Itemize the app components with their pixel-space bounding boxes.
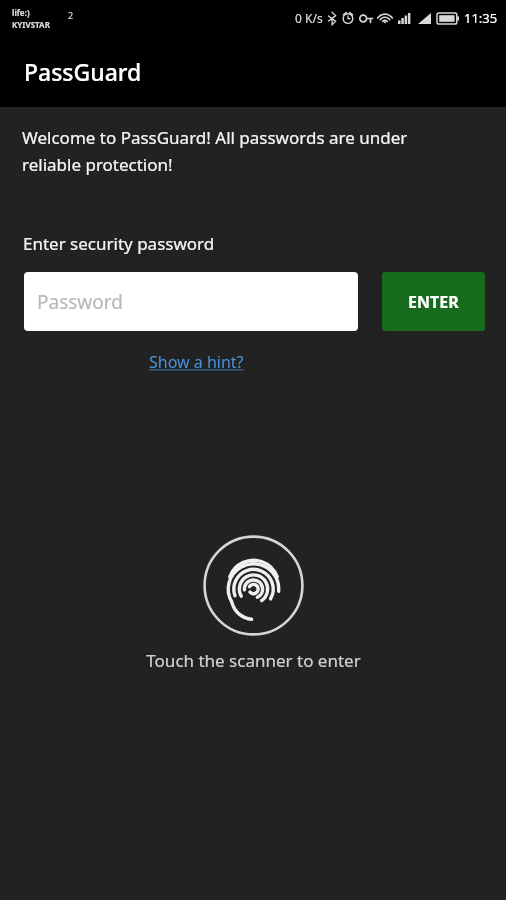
button[interactable]: Password [24,272,358,331]
button[interactable]: ENTER [382,272,485,331]
staticText: ENTER [408,291,459,313]
staticText: KYIVSTAR [12,19,50,30]
staticText: Enter security password [23,232,215,255]
staticText: 2 [68,9,74,21]
staticText: Password [37,289,123,315]
staticText: 0 K/s [295,10,323,26]
button[interactable]: Fingerprint scanner [203,535,304,636]
staticText: life:) [12,7,30,18]
staticText: Welcome to PassGuard! All passwords are … [22,126,466,176]
staticText: PassGuard [24,56,142,87]
staticText: Show a hint? [149,351,244,373]
staticText: 11:35 [464,9,498,27]
button[interactable]: Show a hint? [145,349,248,375]
staticText: Touch the scanner to enter [146,649,361,672]
